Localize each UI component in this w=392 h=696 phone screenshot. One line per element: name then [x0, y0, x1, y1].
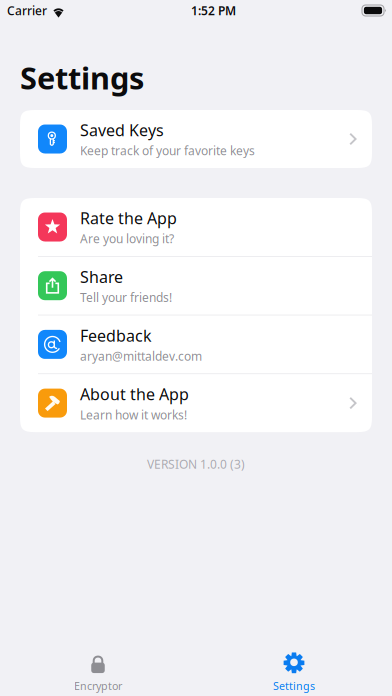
staticText: 1:52 PM [191, 2, 236, 18]
button[interactable]: About the App [20, 374, 372, 432]
staticText: Keep track of your favorite keys [80, 143, 255, 159]
staticText: Carrier [7, 2, 47, 18]
button[interactable]: Encryptor [0, 652, 196, 696]
staticText: Settings [20, 57, 144, 98]
staticText: VERSION 1.0.0 (3) [147, 456, 245, 472]
button[interactable]: Saved Keys [20, 110, 372, 168]
staticText: aryan@mittaldev.com [80, 348, 202, 364]
staticText: Learn how it works! [80, 407, 187, 423]
button[interactable]: Feedback [20, 315, 372, 373]
staticText: Settings [273, 679, 315, 693]
button[interactable]: Share [20, 257, 372, 315]
staticText: Share [80, 266, 123, 287]
button[interactable]: Rate the App [20, 198, 372, 256]
staticText: Saved Keys [80, 119, 164, 141]
staticText: Are you loving it? [80, 231, 174, 247]
staticText: About the App [80, 383, 189, 405]
staticText: Tell your friends! [80, 289, 172, 305]
staticText: Rate the App [80, 207, 177, 229]
staticText: Encryptor [74, 679, 122, 693]
staticText: Feedback [80, 325, 152, 346]
button[interactable]: Settings [196, 652, 392, 696]
